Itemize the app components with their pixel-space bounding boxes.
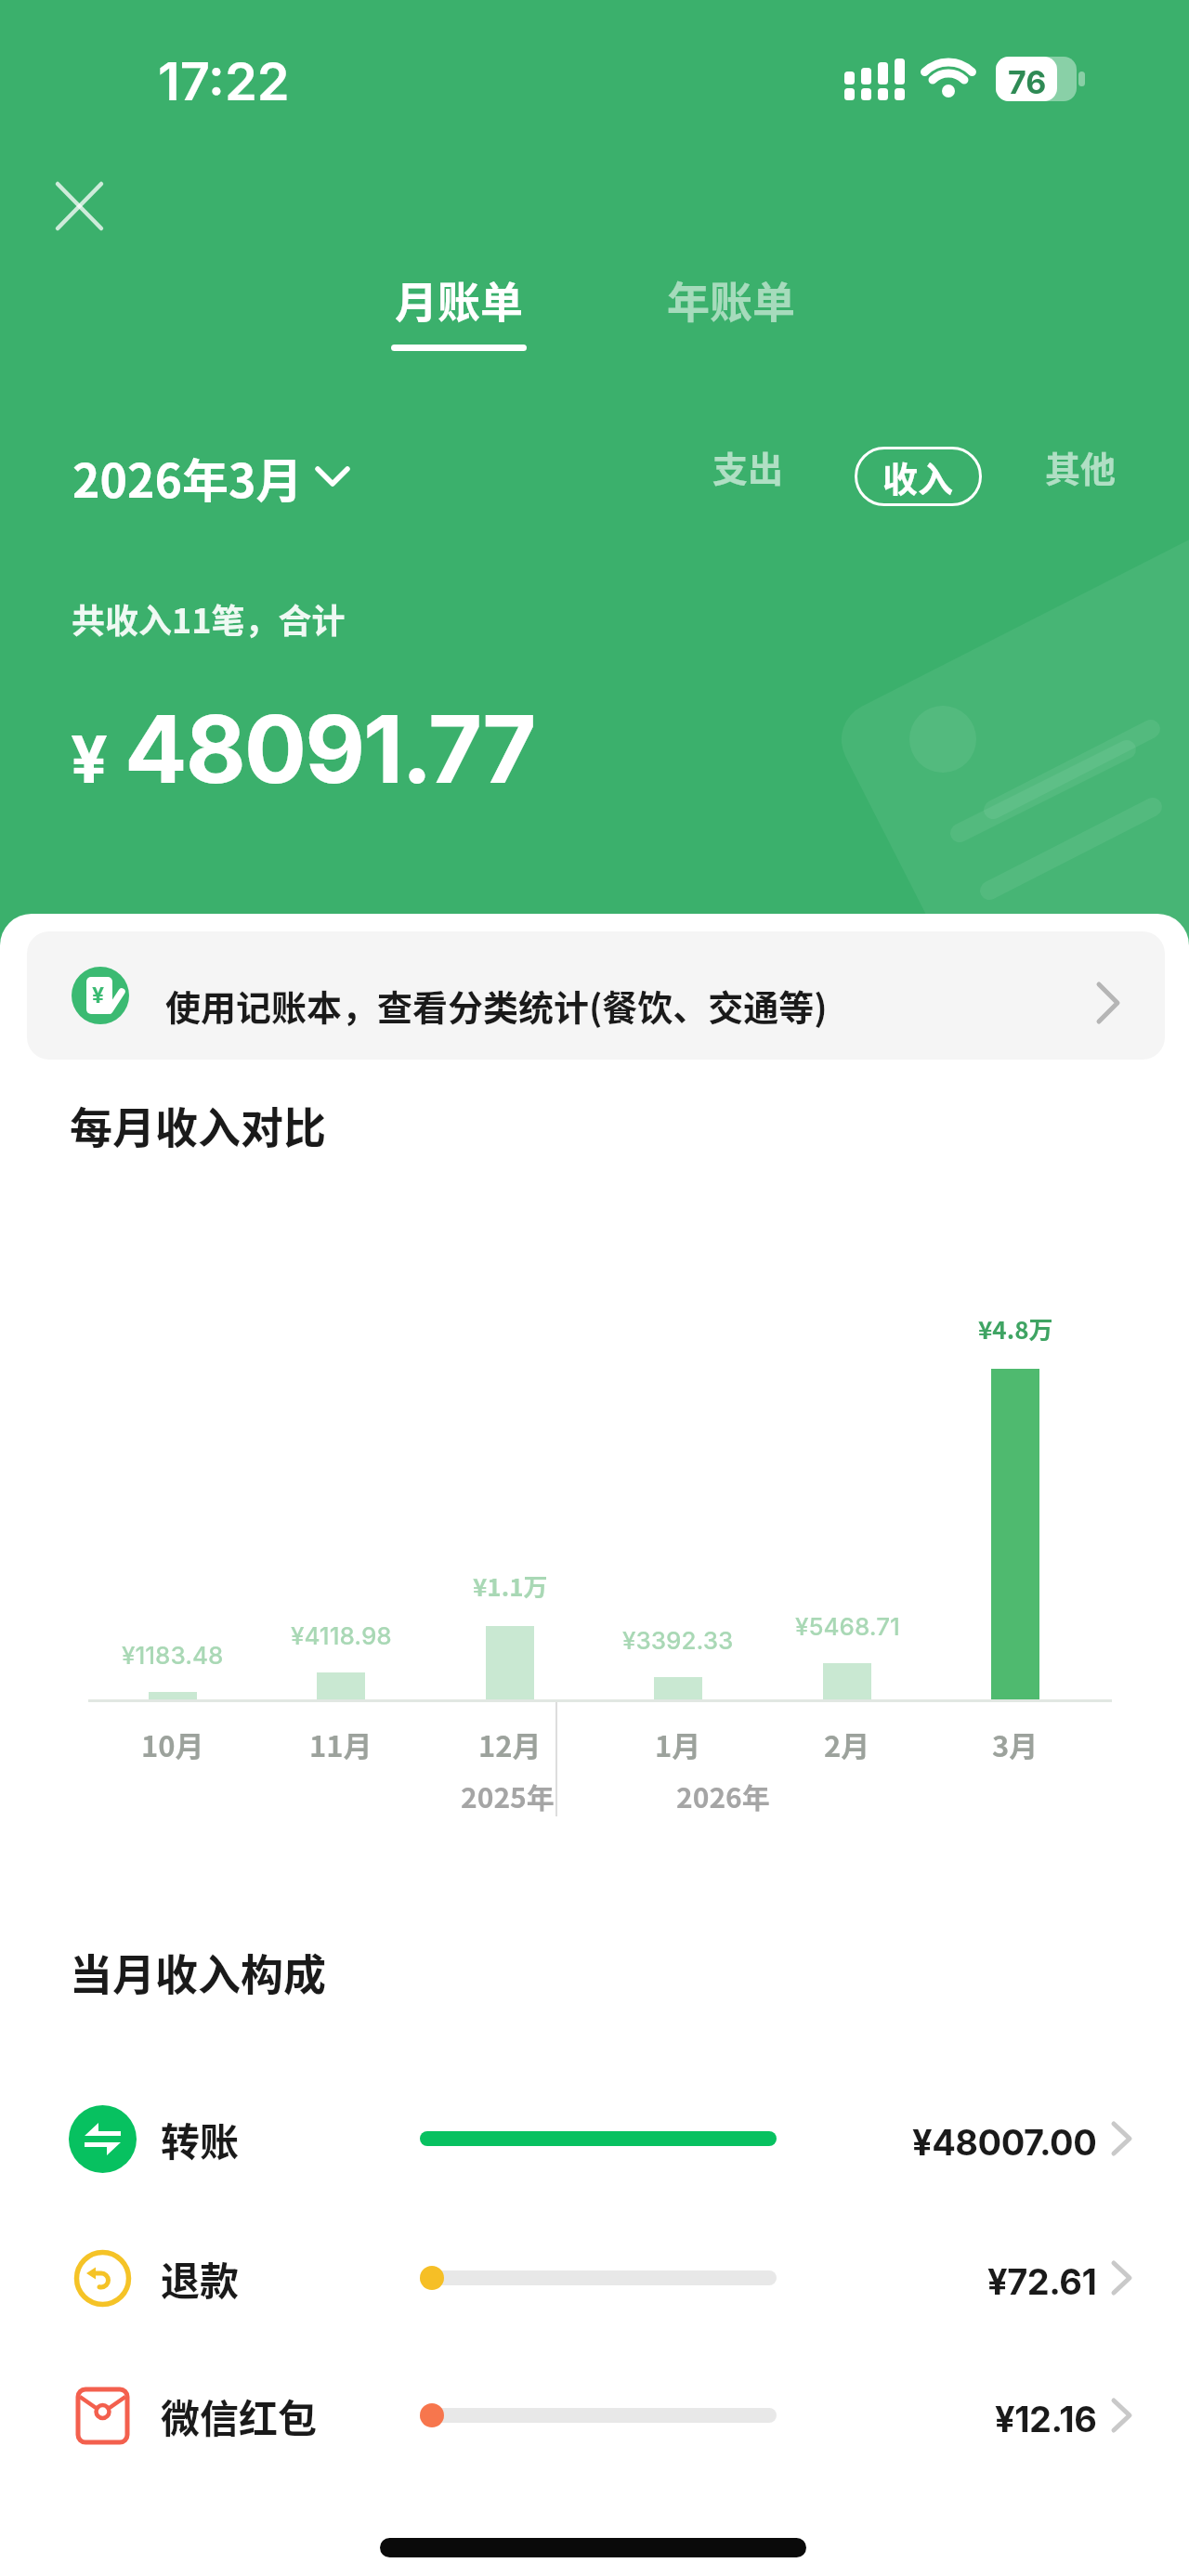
staticText: ¥48007.00 bbox=[912, 2121, 1097, 2164]
staticText: 1月 bbox=[655, 1724, 701, 1765]
staticText: ¥ bbox=[92, 982, 105, 1008]
button[interactable]: 年账单 bbox=[601, 268, 861, 371]
staticText: 收入 bbox=[882, 451, 954, 502]
staticText: 2025年 bbox=[461, 1776, 555, 1815]
staticText: 转账 bbox=[161, 2111, 240, 2167]
staticText: 共收入11笔，合计 bbox=[72, 594, 346, 643]
button[interactable]: 2026年3月 bbox=[72, 440, 347, 514]
staticText: 12月 bbox=[478, 1724, 542, 1765]
staticText: 支出 bbox=[712, 441, 784, 492]
staticText: 微信红包 bbox=[161, 2387, 318, 2444]
button[interactable]: 其他 bbox=[1020, 438, 1141, 494]
button[interactable]: 收入 bbox=[855, 447, 982, 506]
staticText: 11月 bbox=[309, 1724, 372, 1765]
staticText: 2月 bbox=[824, 1724, 870, 1765]
staticText: ¥ bbox=[71, 720, 108, 799]
staticText: ¥4.8万 bbox=[978, 1311, 1053, 1347]
staticText: 2026年 bbox=[676, 1776, 770, 1815]
staticText: ¥1.1万 bbox=[473, 1568, 548, 1604]
staticText: 3月 bbox=[992, 1724, 1039, 1765]
staticText: 48091.77 bbox=[124, 693, 535, 805]
button[interactable]: 退款 bbox=[37, 2222, 1152, 2334]
staticText: 退款 bbox=[161, 2250, 240, 2307]
staticText: 当月收入构成 bbox=[70, 1941, 326, 2003]
button[interactable] bbox=[37, 163, 123, 249]
button[interactable]: ¥ bbox=[27, 931, 1165, 1060]
staticText: 其他 bbox=[1045, 441, 1117, 492]
staticText: 使用记账本，查看分类统计(餐饮、交通等) bbox=[165, 980, 828, 1031]
button[interactable]: 支出 bbox=[687, 438, 808, 494]
button[interactable]: 微信红包 bbox=[37, 2360, 1152, 2471]
staticText: ¥12.16 bbox=[995, 2398, 1097, 2440]
staticText: 2026年3月 bbox=[72, 444, 303, 511]
staticText: 月账单 bbox=[395, 268, 523, 331]
staticText: ¥4118.98 bbox=[291, 1621, 392, 1650]
staticText: 76 bbox=[1008, 63, 1047, 101]
staticText: 年账单 bbox=[667, 268, 795, 331]
staticText: ¥72.61 bbox=[987, 2260, 1097, 2303]
button[interactable]: 转账 bbox=[37, 2083, 1152, 2194]
staticText: ¥3392.33 bbox=[622, 1626, 734, 1655]
staticText: 每月收入对比 bbox=[70, 1094, 326, 1156]
staticText: ¥1183.48 bbox=[122, 1641, 224, 1670]
staticText: 10月 bbox=[141, 1724, 204, 1765]
staticText: 17:22 bbox=[158, 50, 290, 113]
staticText: ¥5468.71 bbox=[795, 1612, 900, 1641]
button[interactable]: 月账单 bbox=[329, 268, 589, 371]
